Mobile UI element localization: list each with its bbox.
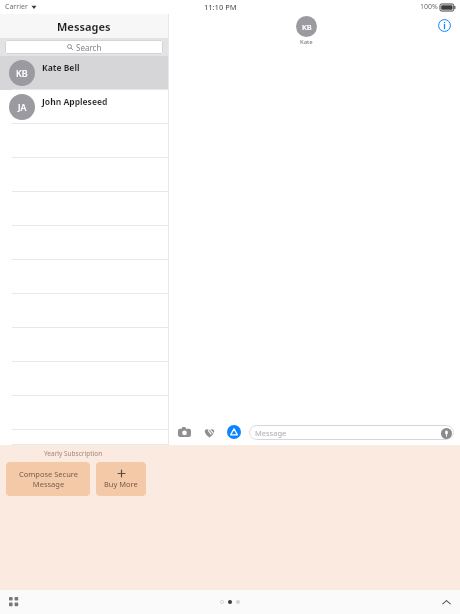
staticText: Yearly Subscription xyxy=(44,449,103,458)
button[interactable]: Camera xyxy=(175,423,193,441)
button[interactable]: KB xyxy=(0,56,168,90)
staticText: Buy More xyxy=(104,479,138,489)
button[interactable]: KB xyxy=(296,16,317,46)
button[interactable]: App drawer xyxy=(6,594,22,610)
staticText: Messages xyxy=(57,19,111,34)
button[interactable]: Message xyxy=(249,425,454,440)
staticText: 11:10 PM xyxy=(204,2,237,12)
button[interactable]: Compose Secure Message xyxy=(6,462,90,496)
staticText: JA xyxy=(18,101,27,113)
button[interactable]: Digital Touch xyxy=(200,423,218,441)
button[interactable]: Search xyxy=(5,40,163,54)
button[interactable]: Buy More xyxy=(96,462,146,496)
staticText: Kate xyxy=(300,38,313,46)
button[interactable]: Record audio xyxy=(440,427,452,439)
staticText: KB xyxy=(16,67,28,79)
button[interactable]: JA xyxy=(0,90,168,124)
staticText: Message xyxy=(255,428,287,438)
staticText: Carrier xyxy=(5,2,28,12)
staticText: 100% xyxy=(420,2,438,12)
staticText: John Appleseed xyxy=(42,96,108,108)
button[interactable]: Expand xyxy=(438,594,454,610)
button[interactable]: App Store xyxy=(225,423,243,441)
staticText: KB xyxy=(302,22,312,32)
button[interactable]: Details xyxy=(436,17,452,33)
staticText: Kate Bell xyxy=(42,62,80,74)
staticText: Search xyxy=(76,42,102,53)
staticText: Compose Secure Message xyxy=(19,469,78,489)
